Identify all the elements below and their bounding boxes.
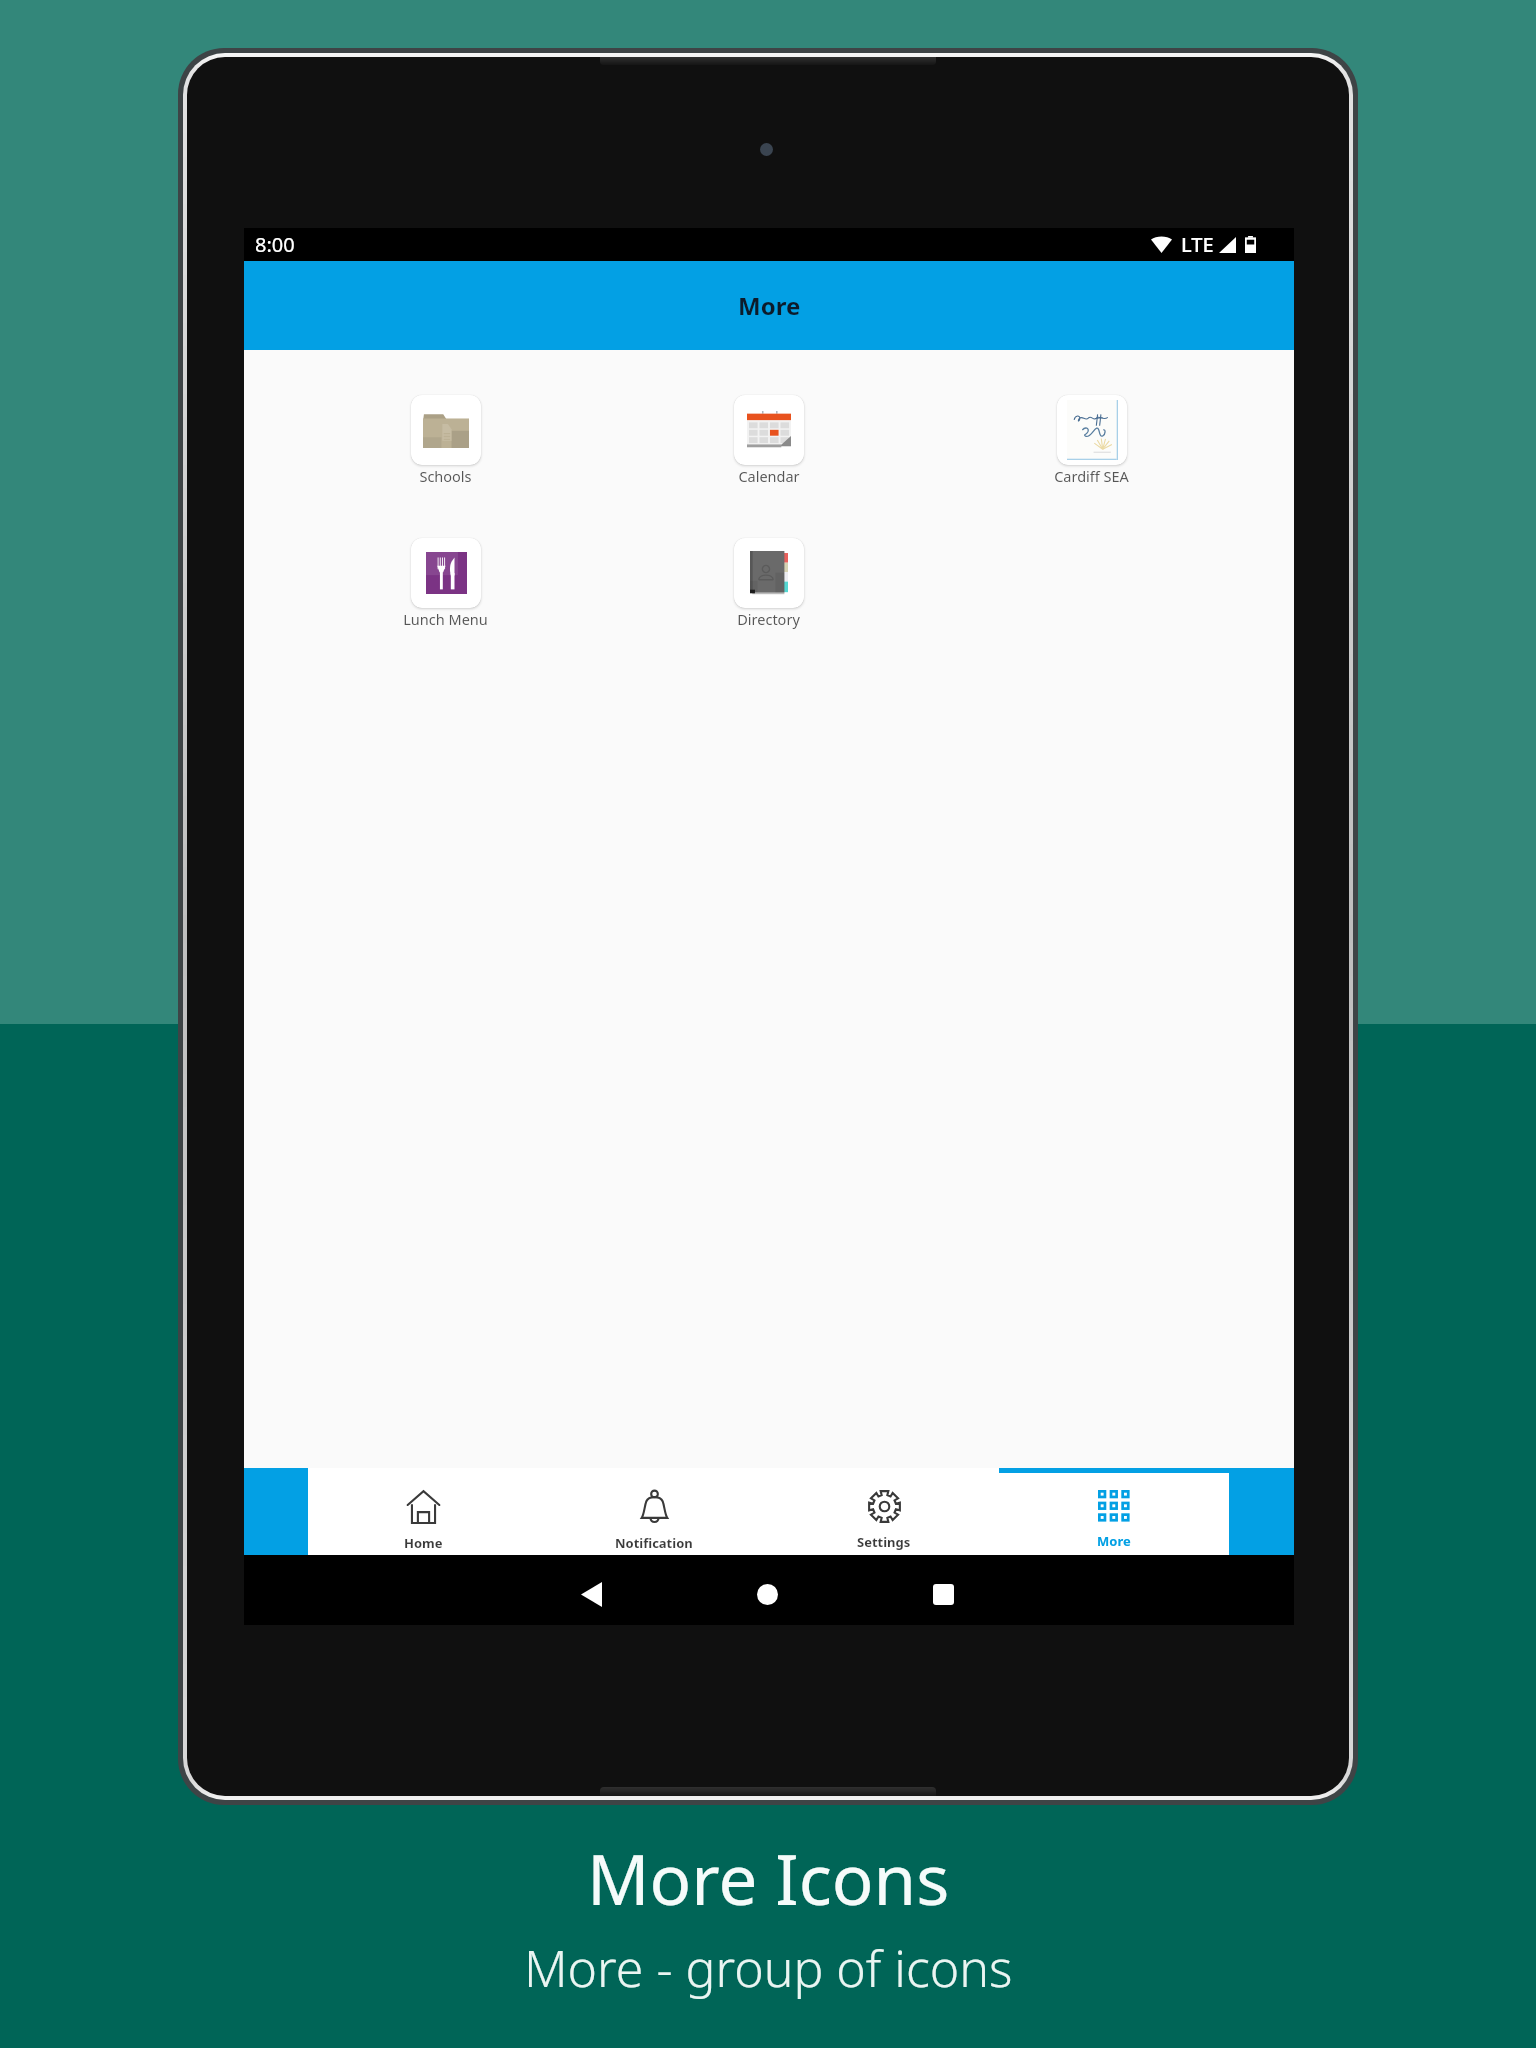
staticText: Cardiff SEA: [1054, 466, 1129, 486]
staticText: More: [738, 289, 801, 322]
staticText: More - group of icons: [524, 1934, 1013, 2002]
staticText: Directory: [737, 609, 800, 629]
staticText: Settings: [857, 1533, 911, 1551]
staticText: Notification: [615, 1534, 693, 1552]
button[interactable]: More: [999, 1468, 1229, 1555]
button[interactable]: Calendar: [607, 395, 930, 486]
button[interactable]: Home: [308, 1468, 539, 1555]
staticText: More Icons: [587, 1831, 950, 1925]
staticText: More: [1097, 1532, 1131, 1550]
staticText: LTE: [1181, 231, 1214, 258]
button[interactable]: Back: [503, 1563, 679, 1625]
staticText: Home: [404, 1534, 443, 1552]
staticText: Lunch Menu: [403, 609, 488, 629]
button[interactable]: Home: [679, 1563, 855, 1625]
staticText: Schools: [419, 466, 472, 486]
button[interactable]: Settings: [769, 1468, 999, 1555]
button[interactable]: Cardiff SEA: [930, 395, 1253, 486]
button[interactable]: Recents: [855, 1563, 1031, 1625]
button[interactable]: Lunch Menu: [284, 538, 607, 629]
staticText: Calendar: [738, 466, 800, 486]
button[interactable]: Schools: [284, 395, 607, 486]
staticText: 8:00: [255, 231, 295, 258]
button[interactable]: Directory: [607, 538, 930, 629]
button[interactable]: Notification: [539, 1468, 769, 1555]
